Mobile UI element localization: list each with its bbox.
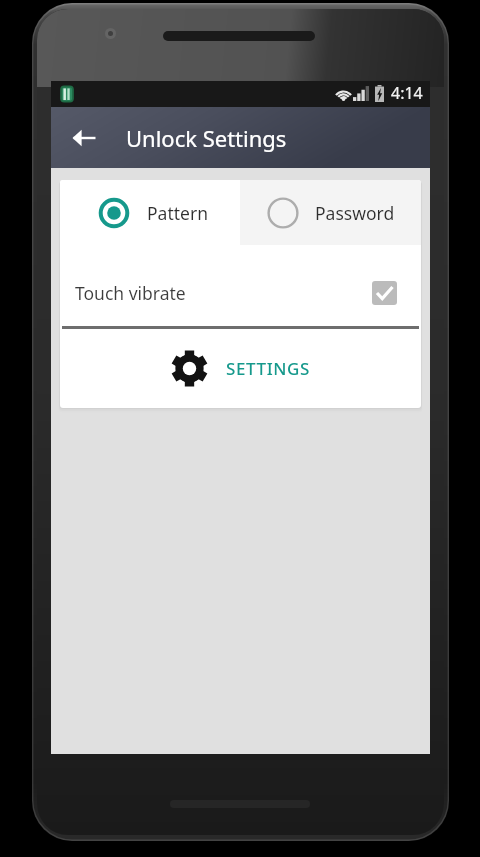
- staticText: SETTINGS: [226, 357, 310, 380]
- staticText: Touch vibrate: [75, 281, 186, 305]
- staticText: Unlock Settings: [126, 123, 287, 153]
- staticText: Pattern: [147, 201, 208, 225]
- button[interactable]: Password: [240, 180, 421, 245]
- button[interactable]: Pattern: [60, 180, 240, 245]
- button[interactable]: SETTINGS: [60, 329, 421, 408]
- staticText: Password: [315, 201, 395, 225]
- button[interactable]: Back: [60, 107, 108, 168]
- button[interactable]: Touch vibrate: [60, 245, 421, 326]
- staticText: 4:14: [391, 82, 423, 104]
